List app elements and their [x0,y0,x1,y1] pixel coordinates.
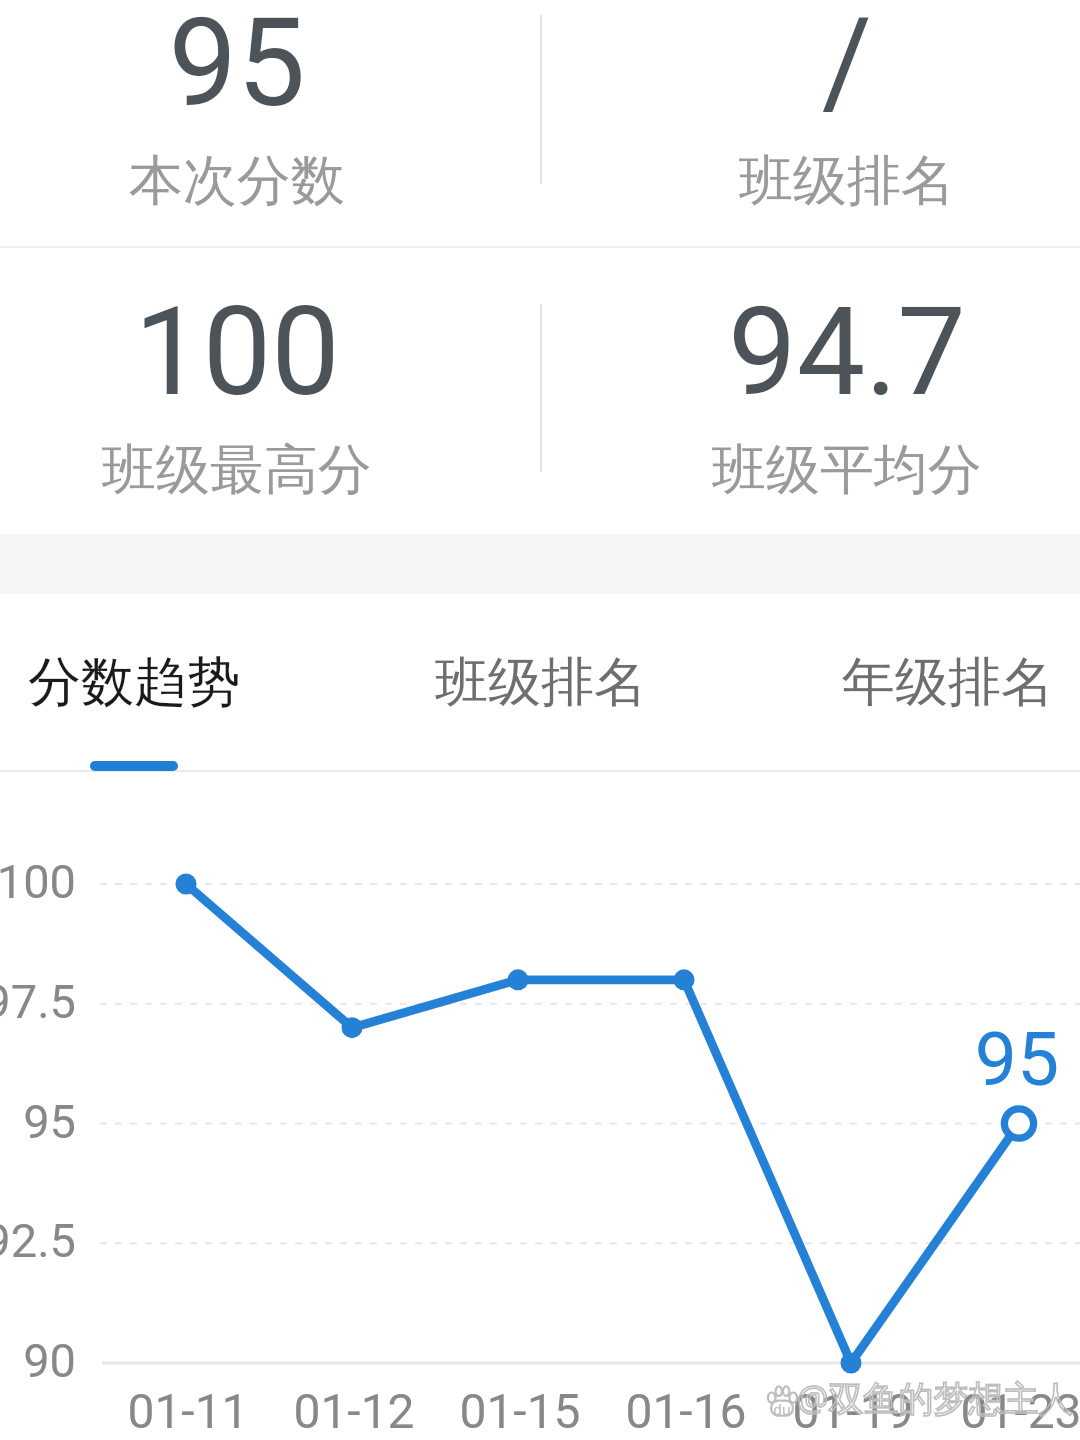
button[interactable]: 94.7 [540,248,1080,534]
staticText: @双鱼的梦想主人 [797,1374,1074,1422]
staticText: 97.5 [0,974,76,1029]
staticText: 年级排名 [842,649,1054,716]
staticText: du [770,1400,794,1419]
button[interactable]: 100 [0,248,540,534]
staticText: 100 [0,854,76,909]
button[interactable]: 95 [0,0,540,246]
button[interactable]: 分数趋势 [28,594,240,772]
staticText: 01-15 [420,1383,620,1439]
staticText: 01-11 [88,1383,288,1439]
staticText: 班级排名 [435,649,647,716]
staticText: / [647,0,1047,135]
staticText: 01-12 [254,1383,454,1439]
staticText: 90 [0,1333,76,1388]
staticText: 本次分数 [37,147,437,215]
staticText: 100 [37,281,437,424]
staticText: 95 [0,1094,76,1149]
staticText: 班级最高分 [37,436,437,504]
staticText: 95 [917,1015,1080,1103]
staticText: 分数趋势 [28,649,240,716]
staticText: 01-19 [753,1383,953,1439]
other: Baidu watermark [766,1383,798,1417]
button[interactable]: 班级排名 [435,594,647,772]
staticText: 班级平均分 [647,436,1047,504]
staticText: 92.5 [0,1213,76,1268]
staticText: 01-16 [586,1383,786,1439]
button[interactable]: 年级排名 [842,594,1054,772]
staticText: 班级排名 [647,147,1047,215]
button[interactable]: / [540,0,1080,246]
staticText: 95 [37,0,437,135]
staticText: 94.7 [647,281,1047,424]
staticText: 01-23 [921,1383,1080,1439]
